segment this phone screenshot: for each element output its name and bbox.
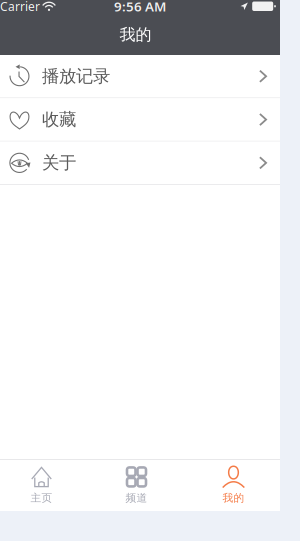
staticText: 我的 <box>119 25 151 44</box>
staticText: 频道 <box>125 491 147 504</box>
staticText: 播放记录 <box>42 66 110 87</box>
button[interactable]: 频道 <box>83 460 190 510</box>
button[interactable]: 我的 <box>190 460 277 510</box>
button[interactable]: 主页 <box>0 460 83 510</box>
staticText: Carrier <box>0 0 40 14</box>
staticText: 我的 <box>222 491 244 504</box>
button[interactable]: 收藏 <box>0 98 280 142</box>
button[interactable]: 关于 <box>0 142 280 185</box>
staticText: 收藏 <box>42 109 76 130</box>
staticText: 关于 <box>42 152 76 173</box>
staticText: 主页 <box>30 491 52 504</box>
staticText: 9:56 AM <box>114 0 166 15</box>
button[interactable]: 播放记录 <box>0 55 280 98</box>
